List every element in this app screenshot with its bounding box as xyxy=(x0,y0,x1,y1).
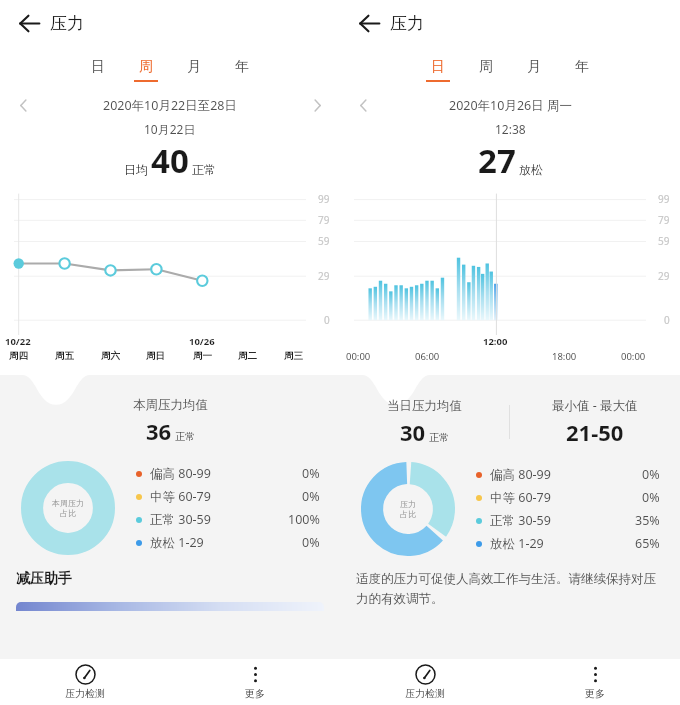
button[interactable]: Back xyxy=(352,6,386,40)
staticText: 99 xyxy=(318,192,330,206)
button[interactable]: Back xyxy=(12,6,46,40)
button[interactable]: Previous xyxy=(0,94,44,116)
staticText: 99 xyxy=(658,192,670,206)
staticText: 压力检测 xyxy=(65,687,105,700)
staticText: 年 xyxy=(235,58,249,76)
button[interactable]: 更多 xyxy=(170,659,340,705)
staticText: 本周压力 xyxy=(52,498,84,508)
staticText: 36 xyxy=(146,416,172,446)
button[interactable]: 更多 xyxy=(510,659,680,705)
staticText: 放松 1-29 xyxy=(490,535,544,552)
staticText: 周一 xyxy=(193,350,212,362)
staticText: 0 xyxy=(664,313,670,327)
staticText: 59 xyxy=(318,234,330,248)
staticText: 本周压力均值 xyxy=(133,397,208,413)
staticText: 10月22日 xyxy=(144,121,196,137)
staticText: 减压助手 xyxy=(16,570,72,588)
staticText: 日均 xyxy=(124,162,148,177)
button[interactable]: 压力检测 xyxy=(0,659,170,705)
staticText: 周 xyxy=(479,58,493,76)
staticText: 压力 xyxy=(50,13,84,34)
staticText: 0% xyxy=(642,489,660,506)
staticText: 年 xyxy=(575,58,589,76)
staticText: 放松 xyxy=(519,162,543,177)
button[interactable]: 日 xyxy=(414,56,462,84)
staticText: 偏高 80-99 xyxy=(490,466,551,483)
other: 压力检测 xyxy=(75,664,96,685)
staticText: 00:00 xyxy=(346,350,371,363)
staticText: 65% xyxy=(635,535,660,552)
staticText: 中等 60-79 xyxy=(490,489,551,506)
staticText: 最小值 - 最大值 xyxy=(552,397,638,414)
staticText: 正常 xyxy=(175,430,195,443)
button[interactable]: 周 xyxy=(462,56,510,84)
staticText: 周日 xyxy=(146,350,165,362)
staticText: 30 xyxy=(400,417,426,447)
staticText: 更多 xyxy=(585,687,605,700)
staticText: 适度的压力可促使人高效工作与生活。请继续保持对压力的有效调节。 xyxy=(356,571,664,607)
button[interactable]: 年 xyxy=(558,56,606,84)
staticText: 周六 xyxy=(101,350,120,362)
staticText: 中等 60-79 xyxy=(150,488,211,505)
staticText: 27 xyxy=(478,138,516,183)
staticText: 10/22 xyxy=(5,335,31,348)
staticText: 日 xyxy=(91,58,105,76)
staticText: 06:00 xyxy=(415,350,440,363)
staticText: 偏高 80-99 xyxy=(150,465,211,482)
button[interactable]: Previous xyxy=(340,94,384,116)
staticText: 100% xyxy=(288,511,320,528)
staticText: 正常 xyxy=(192,162,216,177)
other: 压力检测 xyxy=(415,664,436,685)
staticText: 79 xyxy=(658,213,670,227)
staticText: 0% xyxy=(302,465,320,482)
staticText: 正常 xyxy=(429,431,449,444)
staticText: 40 xyxy=(151,138,189,183)
staticText: 周二 xyxy=(238,350,257,362)
staticText: 00:00 xyxy=(621,350,646,363)
staticText: 日 xyxy=(431,58,445,76)
button[interactable]: 月 xyxy=(510,56,558,84)
staticText: 0% xyxy=(302,534,320,551)
staticText: 正常 30-59 xyxy=(150,511,211,528)
other: 更多 xyxy=(585,664,606,685)
staticText: 放松 1-29 xyxy=(150,534,204,551)
button[interactable]: 年 xyxy=(218,56,266,84)
staticText: 月 xyxy=(187,58,201,76)
staticText: 当日压力均值 xyxy=(387,398,462,414)
button[interactable]: Next xyxy=(296,94,340,116)
staticText: 29 xyxy=(658,269,670,283)
staticText: 10/26 xyxy=(189,335,215,348)
staticText: 压力 xyxy=(390,13,424,34)
staticText: 月 xyxy=(527,58,541,76)
staticText: 2020年10月22日至28日 xyxy=(103,97,238,114)
button[interactable]: 月 xyxy=(170,56,218,84)
staticText: 正常 30-59 xyxy=(490,512,551,529)
staticText: 周 xyxy=(139,58,153,76)
staticText: 29 xyxy=(318,269,330,283)
staticText: 12:38 xyxy=(495,121,526,137)
button[interactable]: 压力检测 xyxy=(340,659,510,705)
staticText: 占比 xyxy=(60,508,76,518)
button[interactable]: 日 xyxy=(74,56,122,84)
staticText: 更多 xyxy=(245,687,265,700)
staticText: 周五 xyxy=(55,350,74,362)
staticText: 12:00 xyxy=(483,335,508,348)
staticText: 21-50 xyxy=(566,417,624,447)
staticText: 周四 xyxy=(9,350,28,362)
staticText: 占比 xyxy=(400,509,416,519)
button[interactable] xyxy=(16,602,324,611)
staticText: 0% xyxy=(302,488,320,505)
staticText: 79 xyxy=(318,213,330,227)
staticText: 18:00 xyxy=(552,350,577,363)
button[interactable]: 周 xyxy=(122,56,170,84)
staticText: 0 xyxy=(324,313,330,327)
staticText: 35% xyxy=(635,512,660,529)
staticText: 压力 xyxy=(400,499,416,509)
staticText: 压力检测 xyxy=(405,687,445,700)
staticText: 59 xyxy=(658,234,670,248)
staticText: 0% xyxy=(642,466,660,483)
other: 更多 xyxy=(245,664,266,685)
staticText: 2020年10月26日 周一 xyxy=(449,97,572,114)
staticText: 周三 xyxy=(284,350,303,362)
